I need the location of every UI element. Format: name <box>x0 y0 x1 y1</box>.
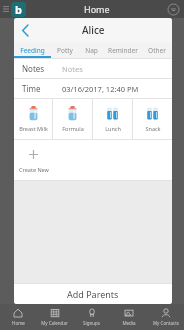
staticText: Nap <box>85 46 98 55</box>
staticText: Create New <box>19 166 49 173</box>
staticText: Signups <box>83 320 100 326</box>
staticText: Add Parents <box>67 288 119 300</box>
staticText: Home <box>12 320 25 326</box>
staticText: Breast Milk <box>19 125 48 132</box>
staticText: Formula <box>62 125 84 132</box>
staticText: Snack <box>145 125 161 132</box>
button[interactable]: Create New <box>14 140 53 180</box>
button[interactable]: Reminder <box>103 42 142 58</box>
button[interactable]: Other <box>142 42 172 58</box>
button[interactable]: My Calendar <box>36 304 73 330</box>
button[interactable]: Potty <box>51 42 79 58</box>
staticText: Alice <box>82 23 105 37</box>
staticText: Time <box>22 83 41 94</box>
staticText: My Calendar <box>41 320 68 326</box>
button[interactable]: Time <box>14 79 172 98</box>
staticText: My Contacts <box>153 320 179 326</box>
button[interactable]: Home <box>0 304 36 330</box>
staticText: Home <box>84 3 110 15</box>
staticText: 03/16/2017, 12:40 PM <box>62 84 139 94</box>
button[interactable]: Snack <box>133 99 172 139</box>
staticText: b <box>15 2 22 17</box>
button[interactable]: Notes <box>14 59 172 78</box>
button[interactable]: Add Parents <box>14 284 172 304</box>
staticText: Notes <box>22 63 45 74</box>
button[interactable]: Back <box>14 18 36 42</box>
button[interactable]: Signups <box>73 304 110 330</box>
button[interactable]: Feeding <box>14 42 51 58</box>
staticText: Potty <box>57 46 73 55</box>
button[interactable]: Media <box>110 304 147 330</box>
button[interactable]: Breast Milk <box>14 99 52 139</box>
staticText: Lunch <box>105 125 121 132</box>
staticText: Other <box>148 46 166 55</box>
button[interactable]: Lunch <box>93 99 132 139</box>
button[interactable]: Nap <box>79 42 103 58</box>
button[interactable]: Formula <box>53 99 92 139</box>
button[interactable]: My Contacts <box>147 304 184 330</box>
staticText: Feeding <box>20 46 45 55</box>
staticText: Notes <box>62 64 83 74</box>
staticText: Media <box>122 320 136 326</box>
staticText: Reminder <box>108 46 138 55</box>
